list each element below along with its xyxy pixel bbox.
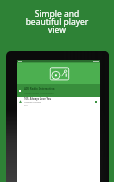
- staticText: Whitney Houston: [24, 101, 42, 104]
- button[interactable]: 105. Always Love You: [17, 97, 100, 106]
- staticText: United States, Washington: [24, 91, 54, 94]
- staticText: Simple and beautiful player view: [0, 8, 114, 36]
- button[interactable]: Stop: [17, 84, 100, 97]
- staticText: AIR Radio Interactiva: [24, 87, 55, 91]
- staticText: 4:21: [24, 104, 28, 106]
- staticText: 105. Always Love You: [24, 97, 52, 101]
